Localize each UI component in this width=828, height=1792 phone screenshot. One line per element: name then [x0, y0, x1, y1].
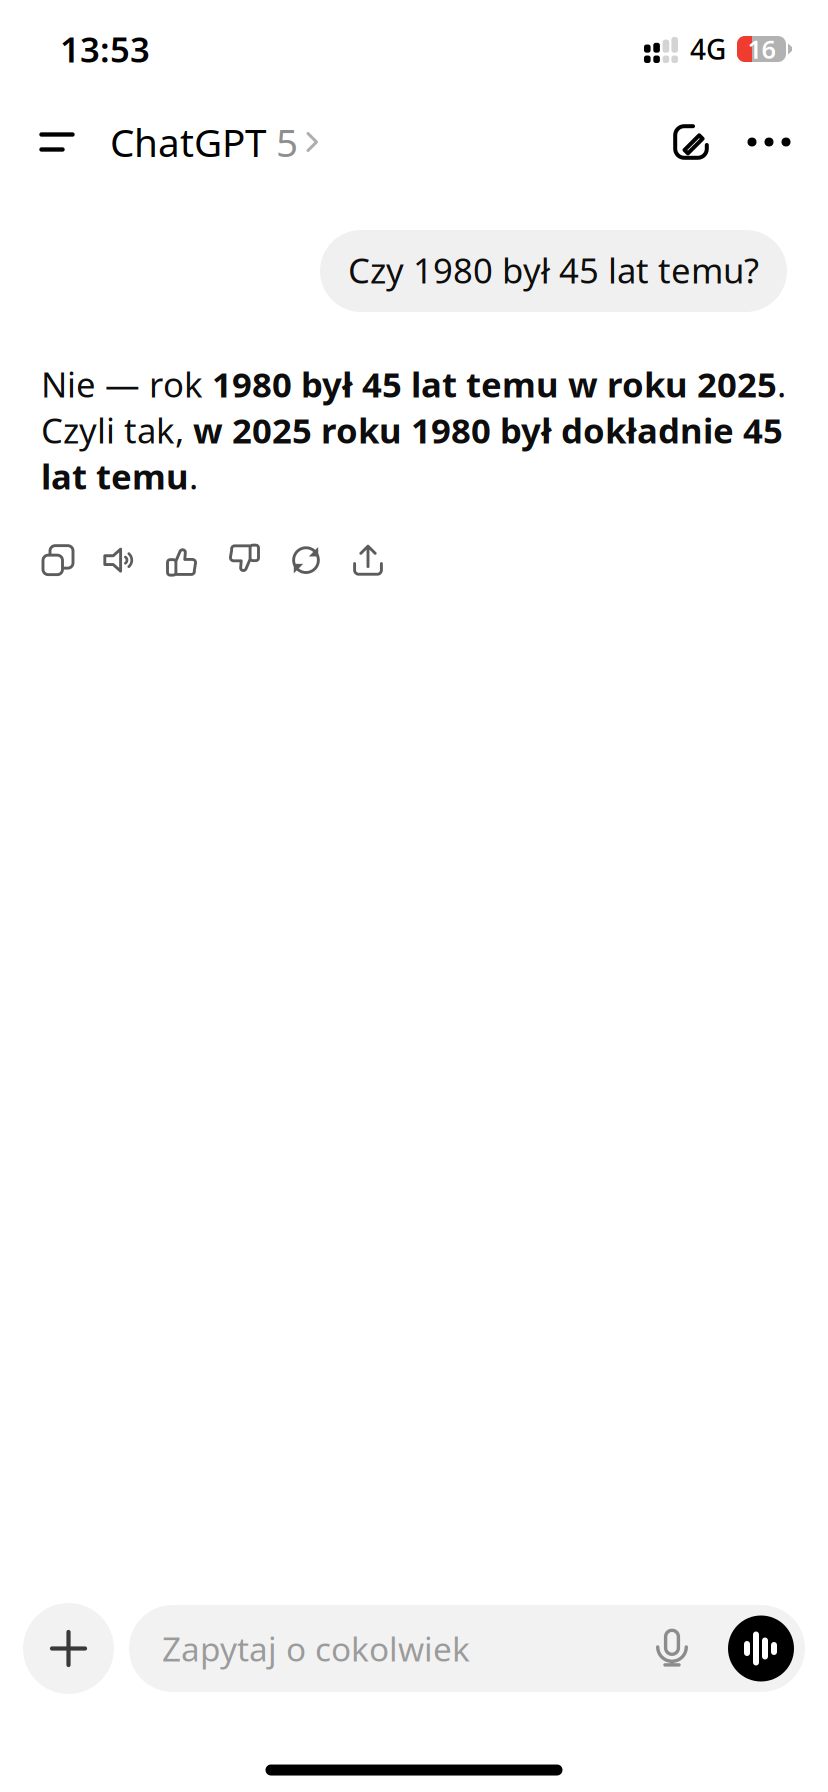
button[interactable]: Dictate: [656, 1605, 688, 1692]
button[interactable]: Voice mode: [728, 1605, 794, 1692]
button[interactable]: Attach: [23, 1603, 114, 1694]
staticText: Czy 1980 był 45 lat temu?: [348, 247, 759, 293]
staticText: 4G: [690, 30, 726, 68]
button[interactable]: New chat: [650, 98, 732, 186]
button[interactable]: Copy: [38, 529, 78, 591]
button[interactable]: Sidebar: [26, 98, 88, 186]
button[interactable]: Read aloud: [100, 529, 140, 591]
button[interactable]: More options: [732, 98, 806, 186]
button[interactable]: Bad response: [224, 529, 264, 591]
button[interactable]: Czy 1980 był 45 lat temu?: [320, 230, 787, 312]
staticText: 13:53: [60, 26, 150, 72]
staticText: Nie — rok 1980 był 45 lat temu w roku 20…: [41, 361, 786, 499]
staticText: Zapytaj o cokolwiek: [162, 1626, 470, 1671]
button[interactable]: Good response: [162, 529, 202, 591]
staticText: 5: [266, 116, 298, 168]
button[interactable]: Regenerate: [286, 529, 326, 591]
button[interactable]: ChatGPT: [88, 98, 334, 186]
staticText: 16: [747, 32, 775, 66]
staticText: ChatGPT: [110, 116, 266, 168]
button[interactable]: Share: [348, 529, 388, 591]
